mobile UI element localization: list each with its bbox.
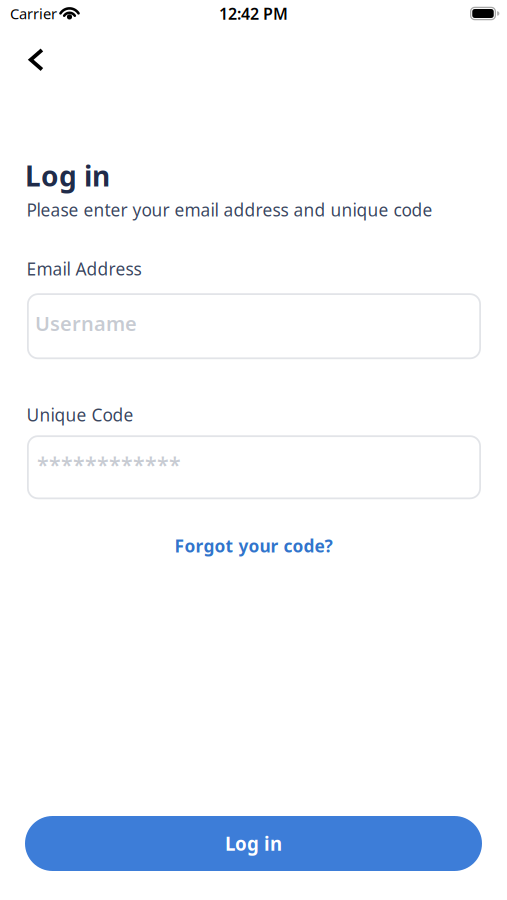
button[interactable]: ************ bbox=[27, 435, 481, 499]
staticText: Please enter your email address and uniq… bbox=[26, 198, 432, 221]
staticText: ************ bbox=[37, 450, 181, 478]
staticText: Email Address bbox=[26, 257, 141, 280]
staticText: Unique Code bbox=[26, 403, 133, 426]
button[interactable]: Log in bbox=[25, 816, 482, 871]
staticText: 12:42 PM bbox=[219, 3, 288, 24]
staticText: Log in bbox=[225, 831, 282, 856]
staticText: Username bbox=[35, 310, 137, 336]
button[interactable]: Forgot your code? bbox=[174, 534, 332, 557]
button[interactable]: Back bbox=[0, 27, 56, 87]
button[interactable]: Username bbox=[27, 293, 481, 359]
staticText: Forgot your code? bbox=[174, 534, 332, 557]
staticText: Carrier bbox=[10, 4, 57, 23]
staticText: Log in bbox=[25, 157, 110, 194]
